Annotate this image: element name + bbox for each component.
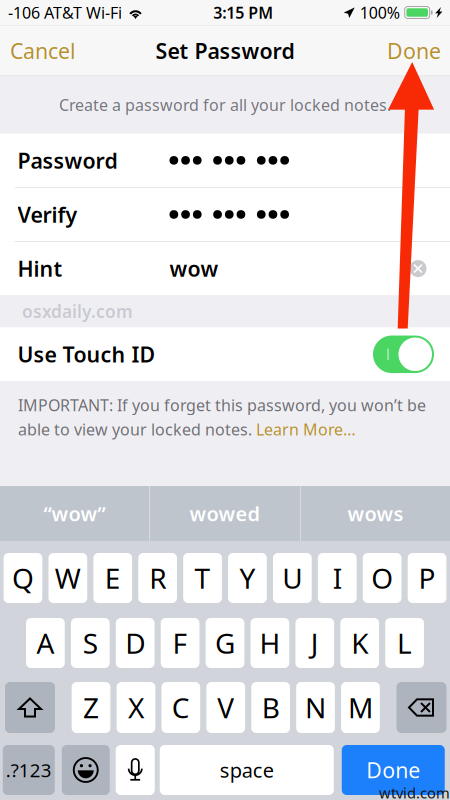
button[interactable]: X <box>117 682 155 733</box>
button[interactable]: W <box>48 553 87 603</box>
button[interactable]: Clear text <box>412 257 434 279</box>
button[interactable]: A <box>26 618 65 668</box>
button[interactable]: I <box>318 553 357 603</box>
staticText: IMPORTANT: If you forget this password, … <box>18 394 426 415</box>
staticText: M <box>348 689 373 726</box>
staticText: Use Touch ID <box>17 340 155 368</box>
button[interactable]: V <box>206 682 245 733</box>
button[interactable]: Emoji <box>62 745 110 795</box>
button[interactable]: T <box>183 553 222 603</box>
button[interactable]: Z <box>72 682 110 733</box>
button[interactable]: P <box>408 553 446 603</box>
staticText: wows <box>347 500 403 527</box>
staticText: .?123 <box>6 758 52 782</box>
staticText: P <box>419 559 436 597</box>
staticText: Cancel <box>10 36 76 65</box>
staticText: Set Password <box>155 36 294 65</box>
staticText: wow <box>169 254 218 283</box>
staticText: A <box>36 624 54 662</box>
staticText: E <box>105 559 121 597</box>
staticText: R <box>149 559 166 597</box>
staticText: B <box>262 689 280 726</box>
staticText: U <box>282 559 302 597</box>
button[interactable]: Shift <box>5 682 55 733</box>
staticText: Create a password for all your locked no… <box>59 94 391 115</box>
staticText: T <box>195 559 211 597</box>
button[interactable]: R <box>138 553 177 603</box>
button[interactable]: Dictation <box>116 745 155 795</box>
button[interactable]: Y <box>228 553 267 603</box>
button[interactable]: Q <box>4 553 42 603</box>
button[interactable]: U <box>273 553 312 603</box>
button[interactable]: B <box>251 682 290 733</box>
button[interactable]: M <box>341 682 380 733</box>
staticText: Z <box>83 689 99 726</box>
staticText: wtvid.com <box>379 783 450 800</box>
staticText: G <box>215 624 235 662</box>
button[interactable]: Use Touch ID <box>373 335 434 373</box>
staticText: 3:15 PM <box>213 2 273 23</box>
staticText: N <box>305 689 326 726</box>
button[interactable]: E <box>93 553 132 603</box>
button[interactable]: Done <box>378 26 450 76</box>
staticText: X <box>128 689 144 726</box>
button[interactable]: space <box>160 745 334 795</box>
staticText: -106 AT&T Wi-Fi <box>8 2 122 23</box>
button[interactable]: J <box>295 618 334 668</box>
staticText: D <box>125 624 145 662</box>
button[interactable]: Done <box>342 745 445 795</box>
staticText: Done <box>387 36 441 65</box>
button[interactable]: K <box>340 618 379 668</box>
button[interactable]: wowed <box>150 486 300 541</box>
staticText: Learn More… <box>256 418 356 440</box>
staticText: V <box>217 689 234 726</box>
button[interactable]: “wow” <box>0 486 149 541</box>
staticText: Verify <box>17 200 77 229</box>
staticText: Password <box>17 146 117 174</box>
button[interactable]: O <box>363 553 401 603</box>
button[interactable]: F <box>161 618 199 668</box>
button[interactable]: Cancel <box>0 26 86 76</box>
staticText: L <box>397 624 412 662</box>
button[interactable]: C <box>161 682 200 733</box>
staticText: Q <box>12 559 34 597</box>
staticText: S <box>83 624 98 662</box>
staticText: Hint <box>17 254 62 283</box>
staticText: Done <box>366 756 420 784</box>
button[interactable]: .?123 <box>3 745 55 795</box>
staticText: O <box>371 559 393 597</box>
staticText: wowed <box>189 500 260 527</box>
staticText: W <box>55 559 81 597</box>
button[interactable]: D <box>116 618 155 668</box>
button[interactable]: G <box>206 618 244 668</box>
staticText: able to view your locked notes. <box>18 418 256 440</box>
button[interactable]: S <box>71 618 110 668</box>
staticText: “wow” <box>43 500 105 527</box>
staticText: H <box>259 624 280 662</box>
button[interactable]: H <box>251 618 289 668</box>
button[interactable]: N <box>296 682 335 733</box>
button[interactable]: L <box>385 618 424 668</box>
staticText: I <box>333 559 342 597</box>
staticText: Y <box>239 559 255 597</box>
staticText: 100% <box>360 2 400 23</box>
staticText: F <box>173 624 188 662</box>
button[interactable]: Delete <box>396 682 446 733</box>
button[interactable]: wows <box>301 486 450 541</box>
staticText: C <box>172 689 190 726</box>
staticText: K <box>351 624 368 662</box>
staticText: J <box>311 624 319 662</box>
staticText: osxdaily.com <box>22 300 133 323</box>
button[interactable]: Learn More… <box>256 418 356 440</box>
staticText: space <box>220 757 274 783</box>
